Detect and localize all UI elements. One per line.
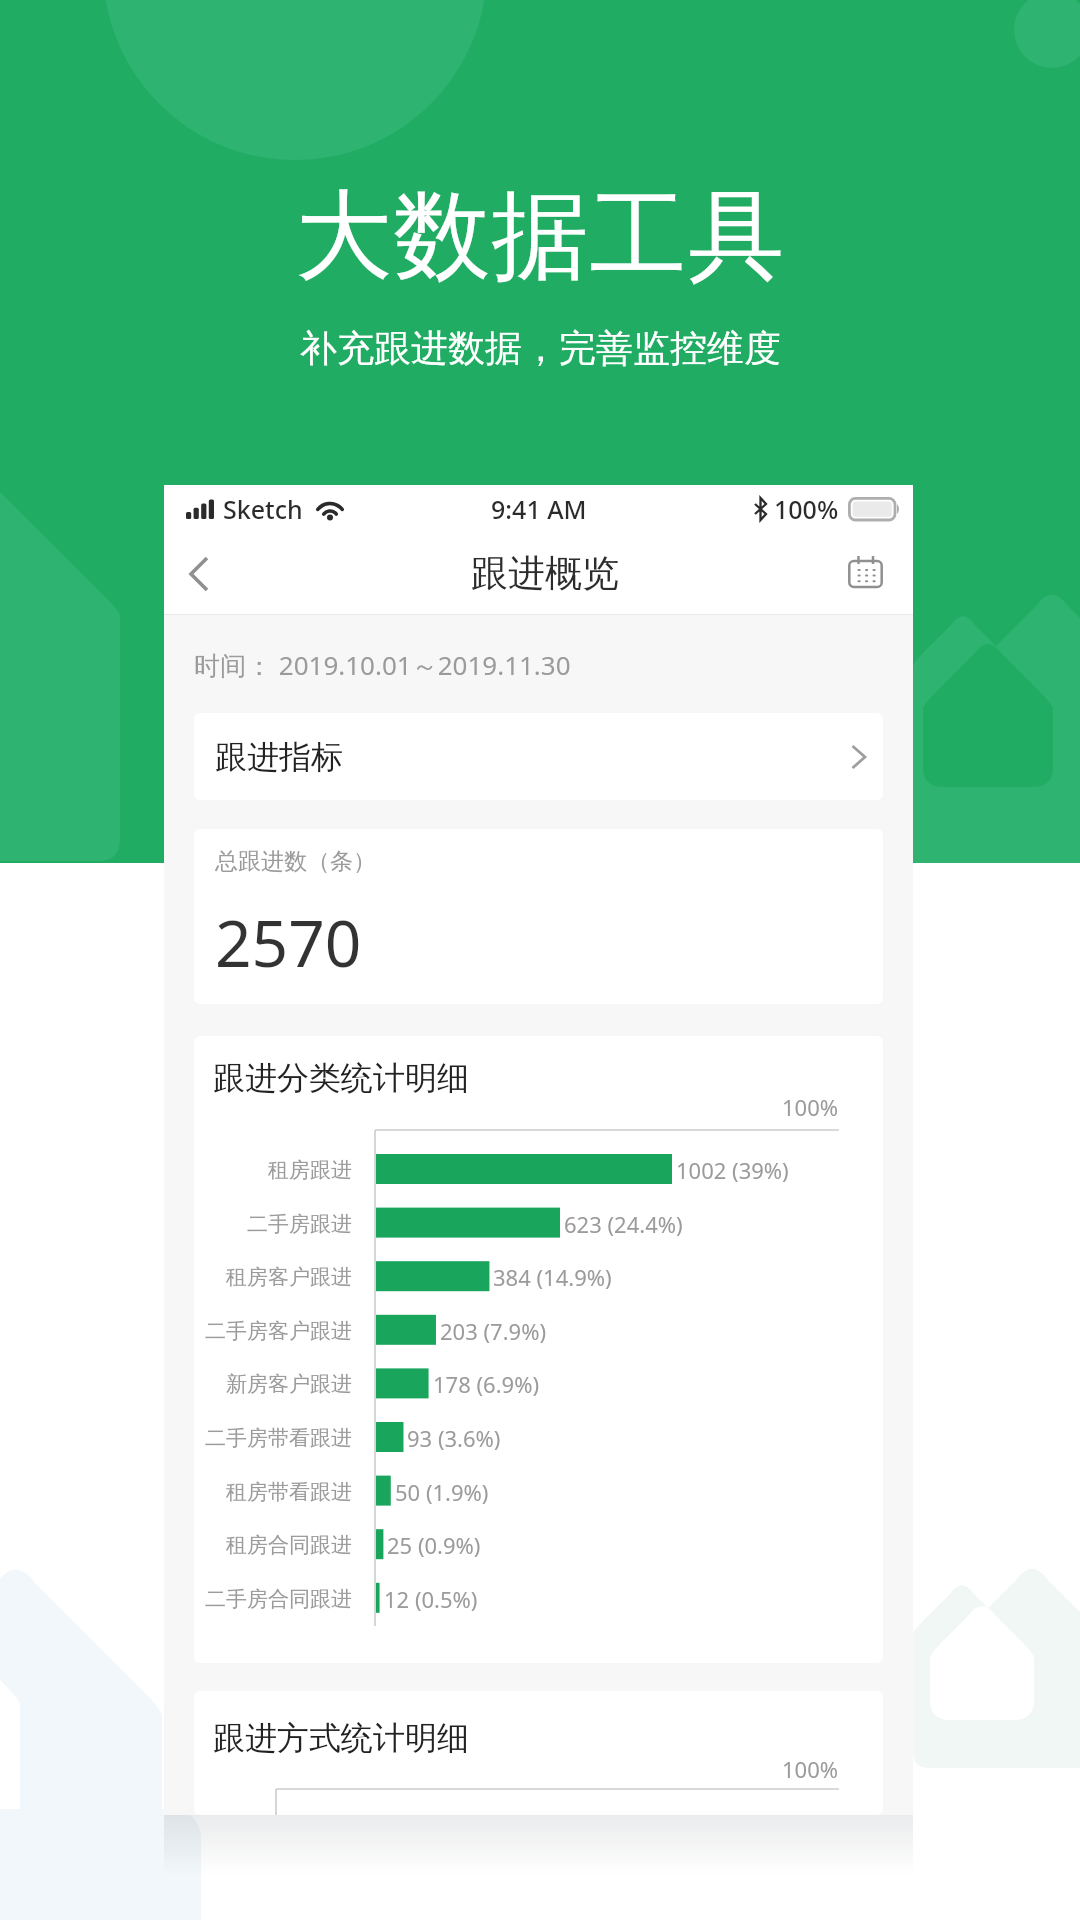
staticText: 384 (14.9%) xyxy=(493,1262,612,1292)
staticText: 补充跟进数据，完善监控维度 xyxy=(300,325,781,372)
staticText: 203 (7.9%) xyxy=(440,1316,547,1346)
button[interactable]: 跟进指标 xyxy=(194,713,883,800)
staticText: 25 (0.9%) xyxy=(387,1530,481,1560)
staticText: 100% xyxy=(782,1092,839,1122)
staticText: 1002 (39%) xyxy=(676,1155,789,1185)
staticText: 二手房带看跟进 xyxy=(205,1425,352,1451)
staticText: 50 (1.9%) xyxy=(395,1477,489,1507)
staticText: 623 (24.4%) xyxy=(564,1209,683,1239)
staticText: 100% xyxy=(774,492,839,526)
staticText: 9:41 AM xyxy=(491,492,587,526)
staticText: 租房带看跟进 xyxy=(226,1479,352,1505)
button[interactable]: 总跟进数（条） xyxy=(194,829,883,1004)
button[interactable]: 跟进方式统计明细 xyxy=(194,1691,883,1815)
staticText: 178 (6.9%) xyxy=(433,1369,540,1399)
button[interactable]: 跟进分类统计明细 xyxy=(194,1036,883,1663)
staticText: Sketch xyxy=(223,492,303,526)
staticText: 二手房跟进 xyxy=(247,1211,352,1237)
staticText: 二手房客户跟进 xyxy=(205,1318,352,1344)
staticText: 租房跟进 xyxy=(268,1157,352,1183)
button[interactable]: Calendar xyxy=(843,539,913,609)
staticText: 跟进指标 xyxy=(215,737,343,777)
staticText: 新房客户跟进 xyxy=(226,1371,352,1397)
staticText: 12 (0.5%) xyxy=(384,1584,478,1614)
staticText: 2570 xyxy=(215,899,362,986)
staticText: 跟进分类统计明细 xyxy=(213,1058,469,1098)
staticText: 租房合同跟进 xyxy=(226,1532,352,1558)
staticText: 时间： 2019.10.01～2019.11.30 xyxy=(194,647,571,683)
staticText: 二手房合同跟进 xyxy=(205,1586,352,1612)
staticText: 跟进概览 xyxy=(471,550,619,597)
staticText: 跟进方式统计明细 xyxy=(213,1718,469,1758)
staticText: 租房客户跟进 xyxy=(226,1264,352,1290)
staticText: 总跟进数（条） xyxy=(215,847,376,876)
staticText: 大数据工具 xyxy=(295,176,785,298)
staticText: 93 (3.6%) xyxy=(407,1423,501,1453)
button[interactable]: Back xyxy=(164,539,234,609)
staticText: 100% xyxy=(782,1754,839,1784)
